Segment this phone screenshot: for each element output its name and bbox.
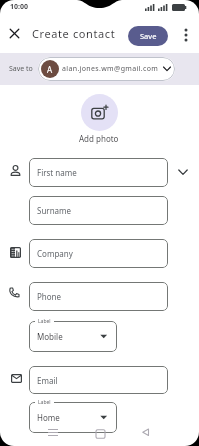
button[interactable]: Surname — [29, 196, 168, 225]
staticText: alan.jones.wm@gmail.com — [62, 64, 159, 74]
staticText: 10:00 — [10, 2, 28, 12]
button[interactable]: Save — [128, 26, 168, 46]
button[interactable]: Mobile — [29, 321, 117, 352]
staticText: Label — [38, 399, 51, 406]
button[interactable]: First name — [29, 158, 168, 187]
button[interactable]: Email — [29, 366, 168, 394]
staticText: Mobile — [37, 331, 63, 342]
staticText: A — [47, 64, 53, 75]
staticText: Surname — [37, 205, 72, 216]
staticText: Save — [140, 31, 157, 41]
staticText: Email — [37, 375, 58, 386]
button[interactable]: A — [38, 57, 175, 81]
staticText: Save to — [9, 64, 33, 74]
button[interactable] — [6, 25, 23, 42]
staticText: First name — [37, 167, 77, 178]
staticText: Add photo — [79, 133, 119, 144]
staticText: Label — [38, 318, 51, 325]
staticText: Create contact — [32, 26, 116, 41]
button[interactable]: Phone — [29, 282, 168, 311]
staticText: Phone — [37, 291, 62, 302]
button[interactable] — [180, 25, 192, 45]
button[interactable] — [81, 94, 118, 131]
button[interactable]: Company — [29, 239, 168, 268]
staticText: Home — [37, 412, 60, 423]
button[interactable]: Home — [29, 402, 117, 433]
staticText: Company — [37, 248, 73, 259]
